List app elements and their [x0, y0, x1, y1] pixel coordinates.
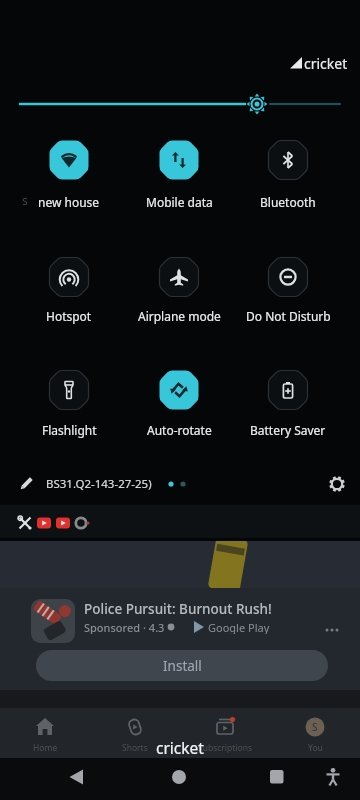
button[interactable] [268, 370, 308, 410]
staticText: Subscriptions [198, 742, 252, 754]
button[interactable]: Home [0, 708, 90, 758]
staticText: You [308, 742, 323, 754]
button[interactable] [159, 140, 199, 180]
button[interactable] [12, 88, 348, 118]
staticText: BS31.Q2-143-27-25) [46, 476, 152, 492]
staticText: cricket [156, 737, 204, 758]
button[interactable] [312, 758, 354, 800]
staticText: Auto-rotate [147, 422, 212, 438]
button[interactable] [159, 257, 199, 297]
button[interactable] [12, 470, 40, 498]
button[interactable] [49, 257, 89, 297]
staticText: Google Play [208, 620, 270, 634]
button[interactable] [253, 758, 301, 800]
staticText: new house [38, 194, 100, 210]
button[interactable] [49, 140, 89, 180]
button[interactable] [49, 370, 89, 410]
button[interactable] [0, 505, 360, 538]
staticText: Battery Saver [250, 422, 326, 438]
staticText: Do Not Disturb [246, 308, 331, 324]
staticText: Mobile data [146, 194, 213, 210]
staticText: Home [33, 742, 58, 754]
staticText: Airplane mode [138, 308, 221, 324]
staticText: Bluetooth [260, 194, 316, 210]
staticText: Install [163, 657, 202, 675]
button[interactable] [52, 758, 100, 800]
staticText: cricket [304, 54, 348, 72]
button[interactable]: Police Pursuit: Burnout Rush! [84, 600, 334, 616]
button[interactable]: Install [36, 650, 328, 681]
staticText: S [312, 720, 318, 734]
staticText: Police Pursuit: Burnout Rush! [84, 600, 272, 616]
button[interactable] [268, 140, 308, 180]
staticText: Shorts [122, 742, 148, 754]
staticText: s [22, 192, 28, 208]
button[interactable]: Shorts [90, 708, 180, 758]
button[interactable] [323, 470, 351, 498]
button[interactable]: S [270, 708, 360, 758]
staticText: Hotspot [46, 308, 92, 324]
button[interactable]: Subscriptions [180, 708, 270, 758]
button[interactable] [31, 599, 75, 643]
button[interactable] [155, 758, 203, 800]
staticText: Sponsored · 4.3 [84, 620, 165, 634]
button[interactable] [268, 257, 308, 297]
button[interactable] [159, 370, 199, 410]
staticText: Flashlight [42, 422, 97, 438]
